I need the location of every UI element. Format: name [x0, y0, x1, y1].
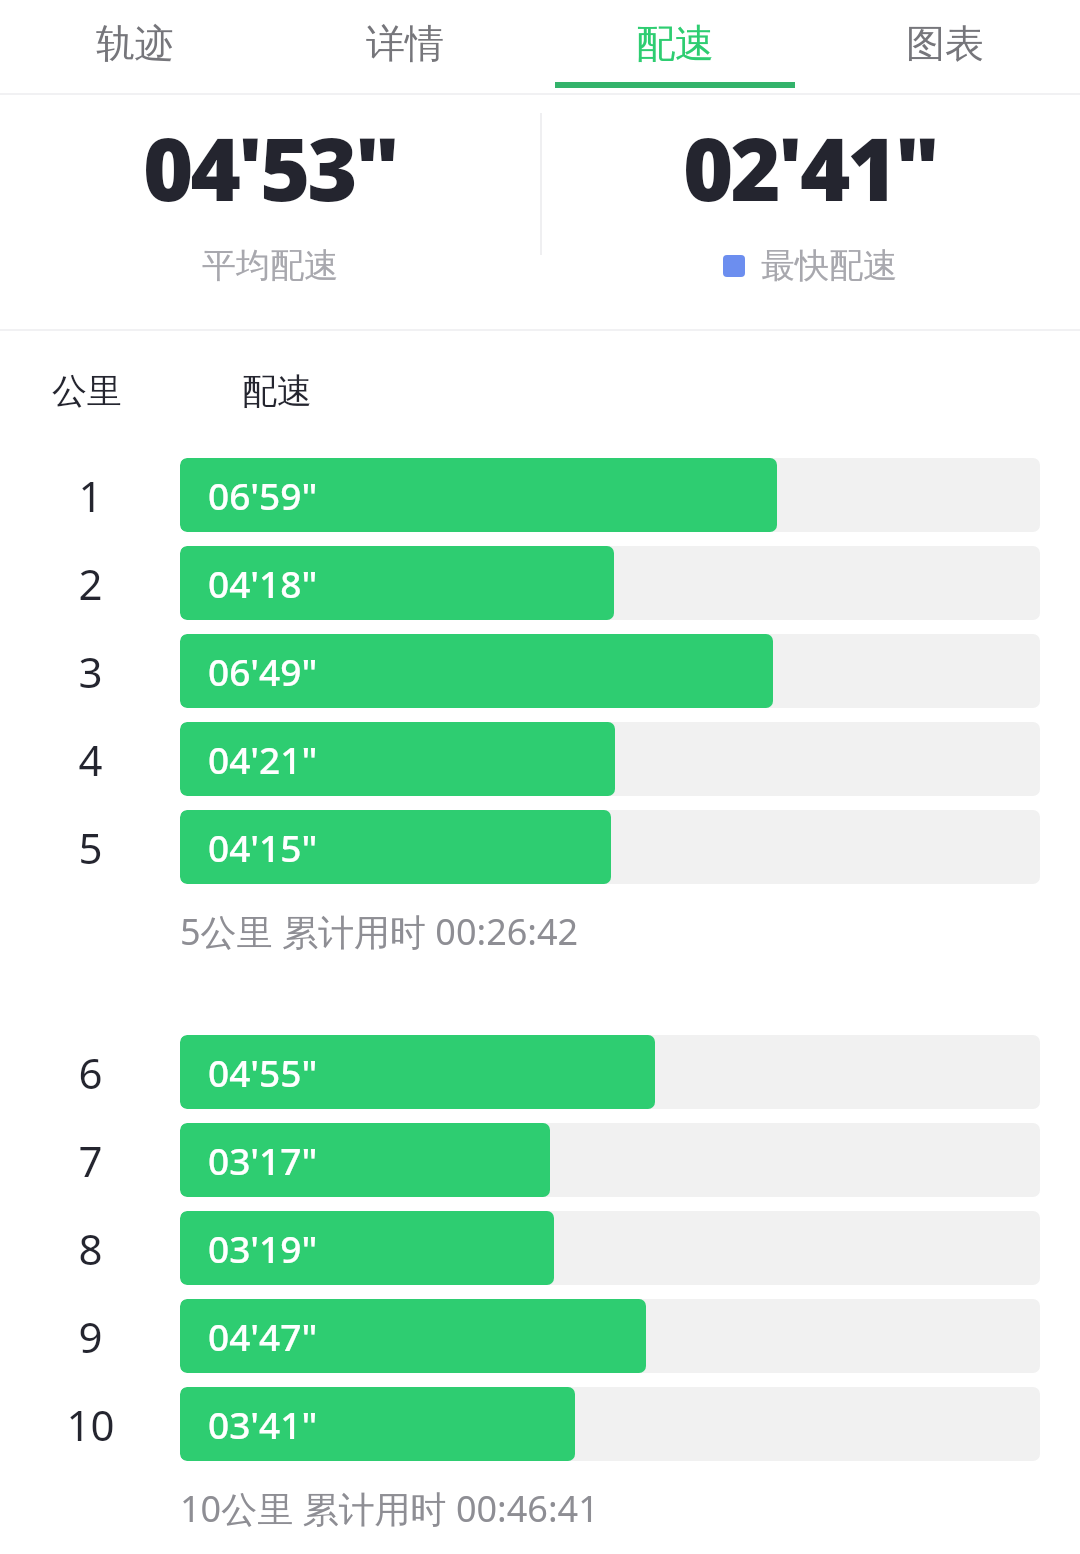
- button[interactable]: 3: [0, 627, 1080, 715]
- button[interactable]: 4: [0, 715, 1080, 803]
- staticText: 详情: [366, 19, 444, 68]
- staticText: 04'55": [208, 1047, 318, 1097]
- staticText: 03'19": [208, 1223, 318, 1273]
- staticText: 06'59": [208, 470, 318, 520]
- staticText: 公里: [52, 369, 122, 413]
- staticText: 4: [78, 731, 103, 788]
- button[interactable]: 详情: [270, 0, 540, 95]
- button[interactable]: 6: [0, 1028, 1080, 1116]
- staticText: 配速: [242, 369, 312, 413]
- staticText: 7: [78, 1132, 103, 1189]
- button[interactable]: 配速: [540, 0, 810, 95]
- staticText: 04'15": [208, 822, 318, 872]
- staticText: 10: [66, 1396, 115, 1453]
- staticText: 03'17": [208, 1135, 318, 1185]
- staticText: 06'49": [208, 646, 318, 696]
- button[interactable]: 轨迹: [0, 0, 270, 95]
- staticText: 04'53": [143, 109, 397, 226]
- button[interactable]: 5: [0, 803, 1080, 891]
- button[interactable]: 1: [0, 451, 1080, 539]
- button[interactable]: 图表: [810, 0, 1080, 95]
- staticText: 04'18": [208, 558, 318, 608]
- staticText: 最快配速: [761, 244, 897, 287]
- staticText: 平均配速: [202, 244, 338, 287]
- button[interactable]: 04'53": [0, 95, 540, 329]
- staticText: 图表: [906, 19, 984, 68]
- staticText: 8: [78, 1220, 103, 1277]
- staticText: 2: [78, 555, 103, 612]
- staticText: 配速: [636, 19, 714, 68]
- staticText: 9: [78, 1308, 103, 1365]
- button[interactable]: 7: [0, 1116, 1080, 1204]
- staticText: 03'41": [208, 1399, 318, 1449]
- staticText: 轨迹: [96, 19, 174, 68]
- button[interactable]: 2: [0, 539, 1080, 627]
- button[interactable]: 8: [0, 1204, 1080, 1292]
- button[interactable]: 9: [0, 1292, 1080, 1380]
- staticText: 5: [78, 819, 103, 876]
- staticText: 10公里 累计用时 00:46:41: [180, 1484, 599, 1533]
- staticText: 5公里 累计用时 00:26:42: [180, 907, 579, 956]
- staticText: 04'47": [208, 1311, 318, 1361]
- staticText: 3: [78, 643, 103, 700]
- staticText: 02'41": [683, 109, 937, 226]
- staticText: 1: [78, 467, 103, 524]
- staticText: 04'21": [208, 734, 318, 784]
- staticText: 6: [78, 1044, 103, 1101]
- button[interactable]: 02'41": [540, 95, 1080, 329]
- button[interactable]: 10: [0, 1380, 1080, 1468]
